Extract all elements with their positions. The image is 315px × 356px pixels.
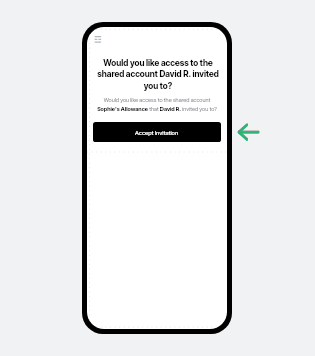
button[interactable]: Accept Invitation [93,122,221,142]
staticText: Accept Invitation [135,129,179,136]
other: Pointer [236,121,262,143]
staticText: Would you like access to the shared acco… [94,58,222,91]
button[interactable]: Menu [93,35,104,44]
staticText: Would you like access to the shared acco… [96,97,218,112]
